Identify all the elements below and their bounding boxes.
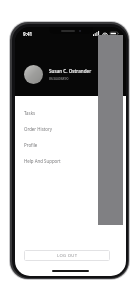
button[interactable]: Tasks (15, 105, 126, 121)
staticText: 8634406890 (49, 76, 69, 81)
staticText: Susan C. Ostrander (49, 68, 92, 74)
staticText: Profile (24, 142, 38, 148)
staticText: Order History (24, 126, 53, 132)
staticText: Tasks (24, 110, 36, 116)
button[interactable]: Susan C. Ostrander (24, 65, 118, 84)
staticText: 9:41 (23, 31, 33, 37)
staticText: LOG OUT (57, 253, 78, 259)
button[interactable]: LOG OUT (24, 250, 110, 261)
button[interactable]: Help And Support (15, 153, 126, 169)
button[interactable]: Profile (15, 137, 126, 153)
staticText: Help And Support (24, 158, 61, 164)
button[interactable]: Order History (15, 121, 126, 137)
